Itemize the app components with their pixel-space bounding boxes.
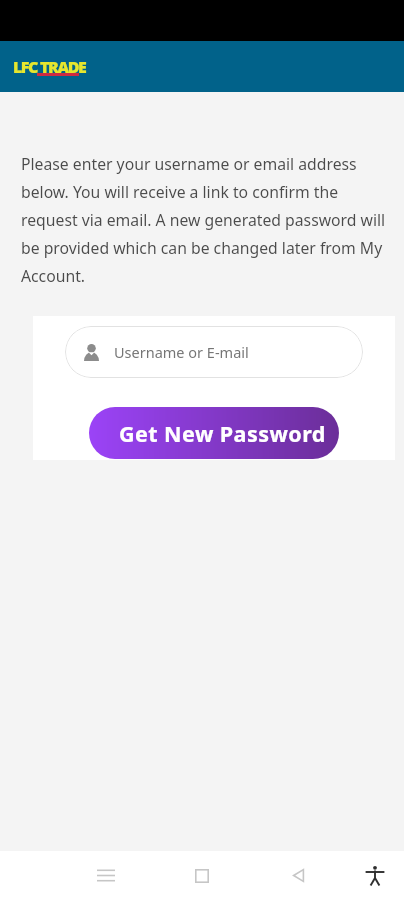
button[interactable]: Home [154, 851, 250, 900]
button[interactable]: Username or E-mail [65, 326, 363, 378]
staticText: TRADE [40, 56, 86, 78]
button[interactable]: Accessibility [346, 851, 404, 900]
button[interactable]: Get New Password [89, 407, 339, 459]
staticText: Username or E-mail [114, 342, 249, 362]
button[interactable]: Back [250, 851, 346, 900]
button[interactable]: Recent apps [58, 851, 154, 900]
staticText: LFC [13, 56, 37, 78]
staticText: Please enter your username or email addr… [21, 153, 389, 287]
staticText: Get New Password [119, 419, 326, 448]
